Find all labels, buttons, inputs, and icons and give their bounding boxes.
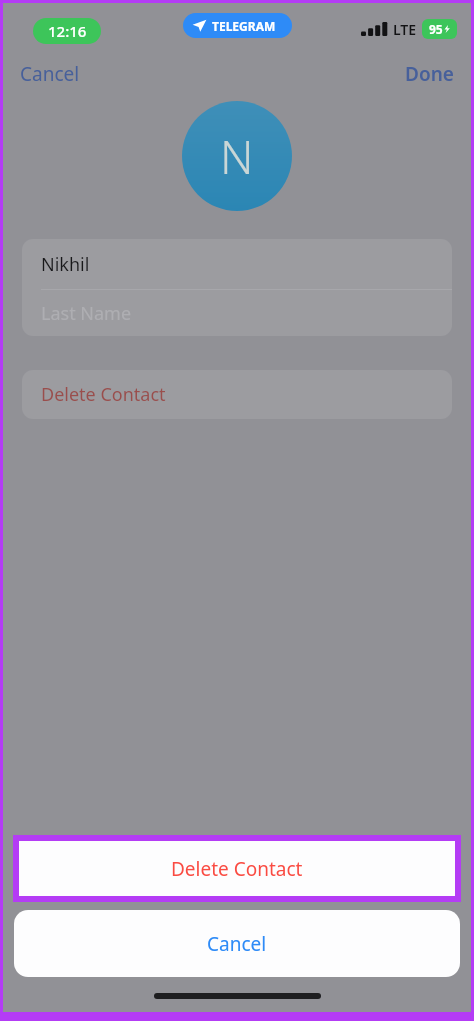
staticText: Last Name [41, 301, 132, 326]
button[interactable]: Nikhil [41, 239, 452, 289]
button[interactable]: Delete Contact [19, 841, 455, 896]
staticText: Cancel [207, 931, 267, 957]
staticText: TELEGRAM [212, 18, 276, 34]
button[interactable]: Contact photo [182, 101, 292, 211]
staticText: Cancel [20, 61, 80, 87]
staticText: LTE [393, 20, 417, 39]
staticText: Delete Contact [41, 382, 166, 407]
button[interactable]: Delete Contact [41, 370, 452, 419]
staticText: 12:16 [48, 21, 87, 41]
staticText: Nikhil [41, 252, 90, 277]
button[interactable]: Cancel [14, 910, 460, 977]
staticText: N [220, 125, 254, 188]
button[interactable]: Done [405, 61, 454, 87]
staticText: 95 [429, 21, 443, 37]
button[interactable]: Cancel [20, 61, 80, 87]
staticText: Delete Contact [171, 856, 303, 882]
staticText: Done [405, 61, 454, 87]
